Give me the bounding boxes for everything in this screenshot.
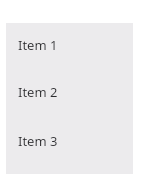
button[interactable]: Item 3 [6, 132, 133, 148]
button[interactable]: Item 2 [6, 83, 133, 99]
button[interactable]: Item 1 [6, 36, 133, 52]
staticText: Item 2 [18, 83, 58, 99]
staticText: Item 1 [18, 36, 58, 52]
staticText: Item 3 [18, 132, 58, 148]
